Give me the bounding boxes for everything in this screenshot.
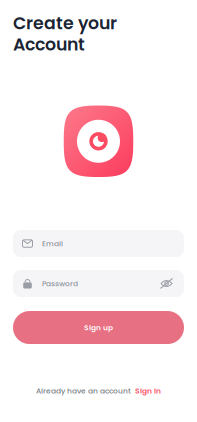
staticText: Account [13,32,85,57]
staticText: Email [42,238,63,249]
button[interactable]: Sign up [13,311,184,344]
staticText: Already have an account [36,385,131,396]
staticText: Sign in [135,385,161,396]
staticText: Sign up [84,322,113,333]
staticText: Create your [13,11,117,35]
button[interactable]: Sign in [131,385,161,396]
staticText: Password [42,278,78,289]
